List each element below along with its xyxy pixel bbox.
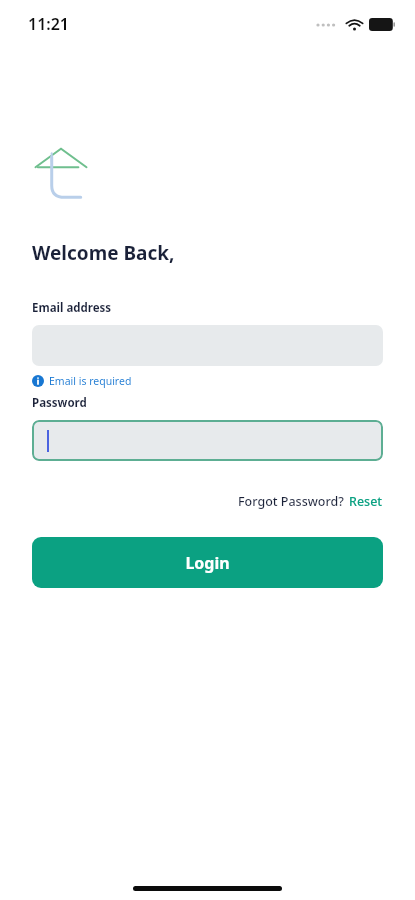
- button[interactable]: [32, 420, 383, 461]
- staticText: Login: [185, 552, 230, 574]
- staticText: Email address: [32, 300, 112, 316]
- staticText: 11:21: [28, 13, 70, 35]
- staticText: Password: [32, 395, 87, 411]
- button[interactable]: Login: [32, 537, 383, 588]
- staticText: Reset: [349, 493, 383, 510]
- staticText: Email is required: [49, 374, 132, 388]
- staticText: Welcome Back,: [32, 240, 175, 266]
- staticText: Forgot Password?: [238, 493, 344, 510]
- button[interactable]: Reset: [349, 493, 383, 510]
